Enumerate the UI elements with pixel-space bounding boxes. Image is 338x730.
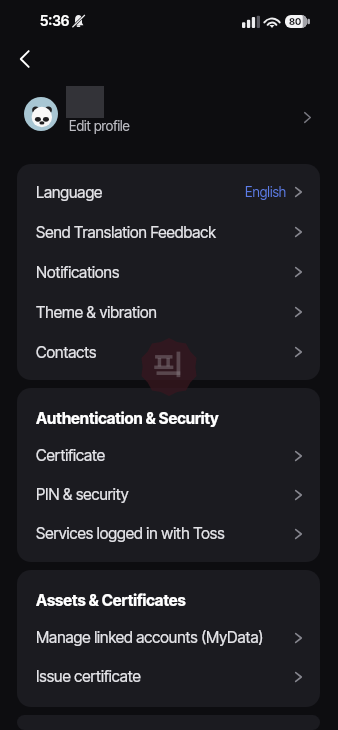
staticText: Notifications bbox=[36, 263, 120, 282]
button[interactable]: Send Translation Feedback bbox=[17, 212, 320, 252]
staticText: Send Translation Feedback bbox=[36, 223, 216, 242]
staticText: 5:36 bbox=[40, 12, 70, 29]
staticText: PIN & security bbox=[36, 485, 129, 504]
button[interactable]: Theme & vibration bbox=[17, 292, 320, 332]
button[interactable]: Edit profile bbox=[0, 79, 338, 139]
button[interactable]: Back bbox=[9, 44, 39, 74]
staticText: Contacts bbox=[36, 343, 97, 362]
staticText: Authentication & Security bbox=[36, 409, 219, 428]
button[interactable]: Issue certificate bbox=[17, 657, 320, 696]
button[interactable]: Services logged in with Toss bbox=[17, 514, 320, 553]
staticText: Certificate bbox=[36, 446, 106, 465]
staticText: Edit profile bbox=[69, 118, 130, 134]
button[interactable]: Certificate bbox=[17, 436, 320, 475]
button[interactable]: PIN & security bbox=[17, 475, 320, 514]
button[interactable]: Notifications bbox=[17, 252, 320, 292]
staticText: Theme & vibration bbox=[36, 303, 157, 322]
staticText: Issue certificate bbox=[36, 667, 141, 686]
button[interactable]: Manage linked accounts (MyData) bbox=[17, 618, 320, 657]
staticText: Manage linked accounts (MyData) bbox=[36, 628, 264, 647]
staticText: Services logged in with Toss bbox=[36, 524, 225, 543]
staticText: English bbox=[245, 184, 287, 200]
staticText: Assets & Certificates bbox=[36, 591, 186, 610]
staticText: Language bbox=[36, 183, 103, 202]
staticText: 80 bbox=[289, 16, 302, 27]
button[interactable]: Language bbox=[17, 172, 320, 212]
button[interactable]: Contacts bbox=[17, 332, 320, 372]
